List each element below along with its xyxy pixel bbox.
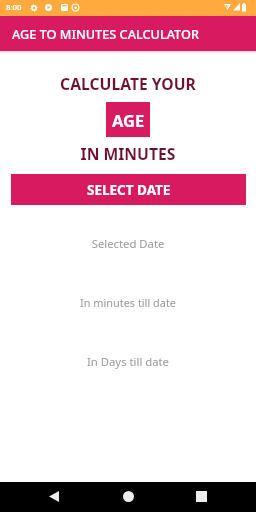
staticText: SELECT DATE bbox=[87, 181, 171, 199]
staticText: Selected Date bbox=[0, 236, 256, 251]
button[interactable]: Back bbox=[38, 481, 69, 511]
staticText: AGE TO MINUTES CALCULATOR bbox=[12, 25, 199, 42]
staticText: CALCULATE YOUR bbox=[0, 73, 256, 94]
staticText: In minutes till date bbox=[0, 295, 256, 310]
staticText: AGE bbox=[112, 109, 145, 131]
button[interactable]: SELECT DATE bbox=[11, 174, 246, 205]
button[interactable]: Recent apps bbox=[186, 481, 217, 511]
staticText: 8:00 bbox=[6, 2, 22, 13]
button[interactable]: Home bbox=[113, 481, 144, 511]
staticText: IN MINUTES bbox=[0, 143, 256, 164]
staticText: In Days till date bbox=[0, 354, 256, 369]
